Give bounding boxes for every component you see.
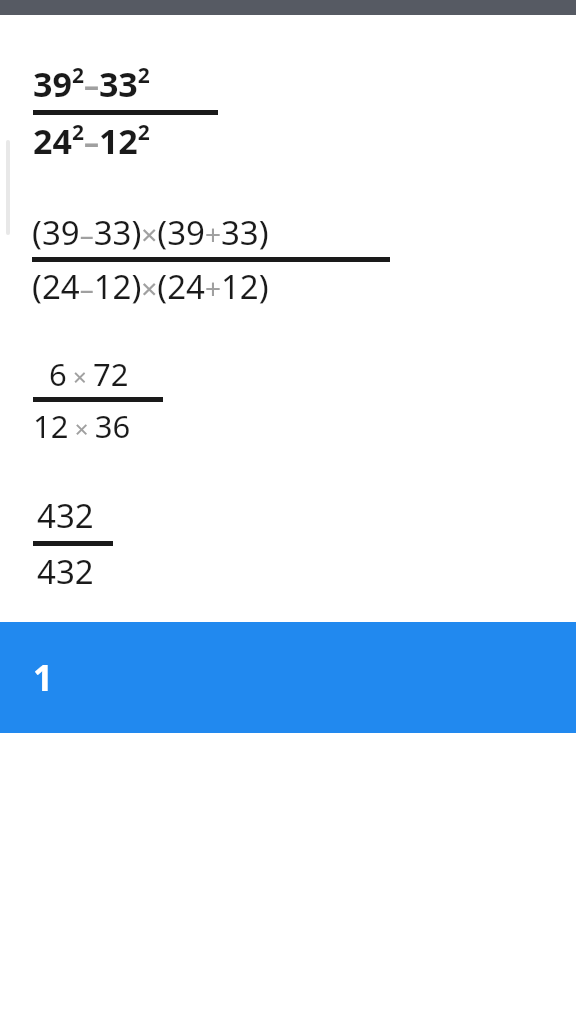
- button[interactable]: 1: [0, 622, 576, 733]
- staticText: 1: [33, 654, 54, 702]
- staticText: 6 × 72: [49, 353, 129, 395]
- staticText: 12 × 36: [33, 405, 131, 447]
- staticText: 432: [37, 549, 94, 594]
- staticText: 432: [37, 493, 94, 538]
- staticText: 242–122: [33, 118, 150, 164]
- staticText: 392–332: [33, 61, 150, 107]
- staticText: (39–33)×(39+33): [32, 210, 269, 255]
- staticText: (24–12)×(24+12): [32, 264, 269, 309]
